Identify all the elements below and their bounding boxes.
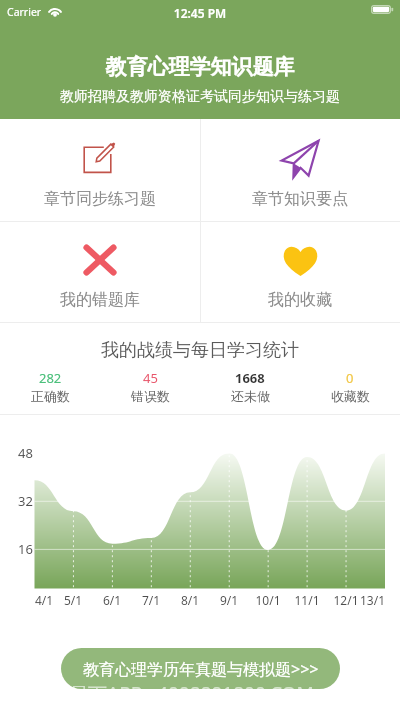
staticText: 282: [39, 369, 62, 387]
staticText: 我的收藏: [200, 290, 400, 310]
staticText: 13/1: [351, 592, 385, 608]
button[interactable]: 章节同步练习题: [0, 119, 200, 221]
staticText: Carrier: [7, 5, 42, 19]
button[interactable]: 章节知识要点: [200, 119, 400, 221]
staticText: 4/1: [35, 592, 69, 608]
staticText: 16: [18, 540, 33, 558]
staticText: 32: [18, 492, 33, 510]
staticText: 8/1: [173, 592, 207, 608]
staticText: 6/1: [95, 592, 129, 608]
button[interactable]: 我的收藏: [200, 221, 400, 323]
staticText: 收藏数: [331, 388, 370, 404]
staticText: 正确数: [31, 388, 70, 404]
staticText: 11/1: [290, 592, 324, 608]
staticText: 10/1: [251, 592, 285, 608]
staticText: 5/1: [56, 592, 90, 608]
staticText: 错误数: [131, 388, 170, 404]
staticText: 我的错题库: [0, 290, 200, 310]
staticText: 12:45 PM: [0, 5, 400, 21]
staticText: 教师招聘及教师资格证考试同步知识与练习题: [0, 88, 400, 106]
staticText: 48: [18, 444, 33, 462]
staticText: 章节同步练习题: [0, 189, 200, 209]
staticText: 易下APP · 4008891800.COM: [69, 681, 314, 707]
staticText: 教育心理学历年真题与模拟题>>>: [83, 658, 319, 680]
staticText: 45: [143, 369, 158, 387]
staticText: 1668: [235, 369, 265, 387]
staticText: 教育心理学知识题库: [0, 54, 400, 80]
staticText: 12/1: [329, 592, 363, 608]
staticText: 还未做: [231, 388, 270, 404]
staticText: 9/1: [212, 592, 246, 608]
staticText: 0: [346, 369, 354, 387]
staticText: 我的战绩与每日学习统计: [0, 339, 400, 362]
staticText: 7/1: [134, 592, 168, 608]
staticText: 章节知识要点: [200, 189, 400, 209]
button[interactable]: 我的错题库: [0, 221, 200, 323]
button[interactable]: 教育心理学历年真题与模拟题>>>: [61, 648, 340, 689]
